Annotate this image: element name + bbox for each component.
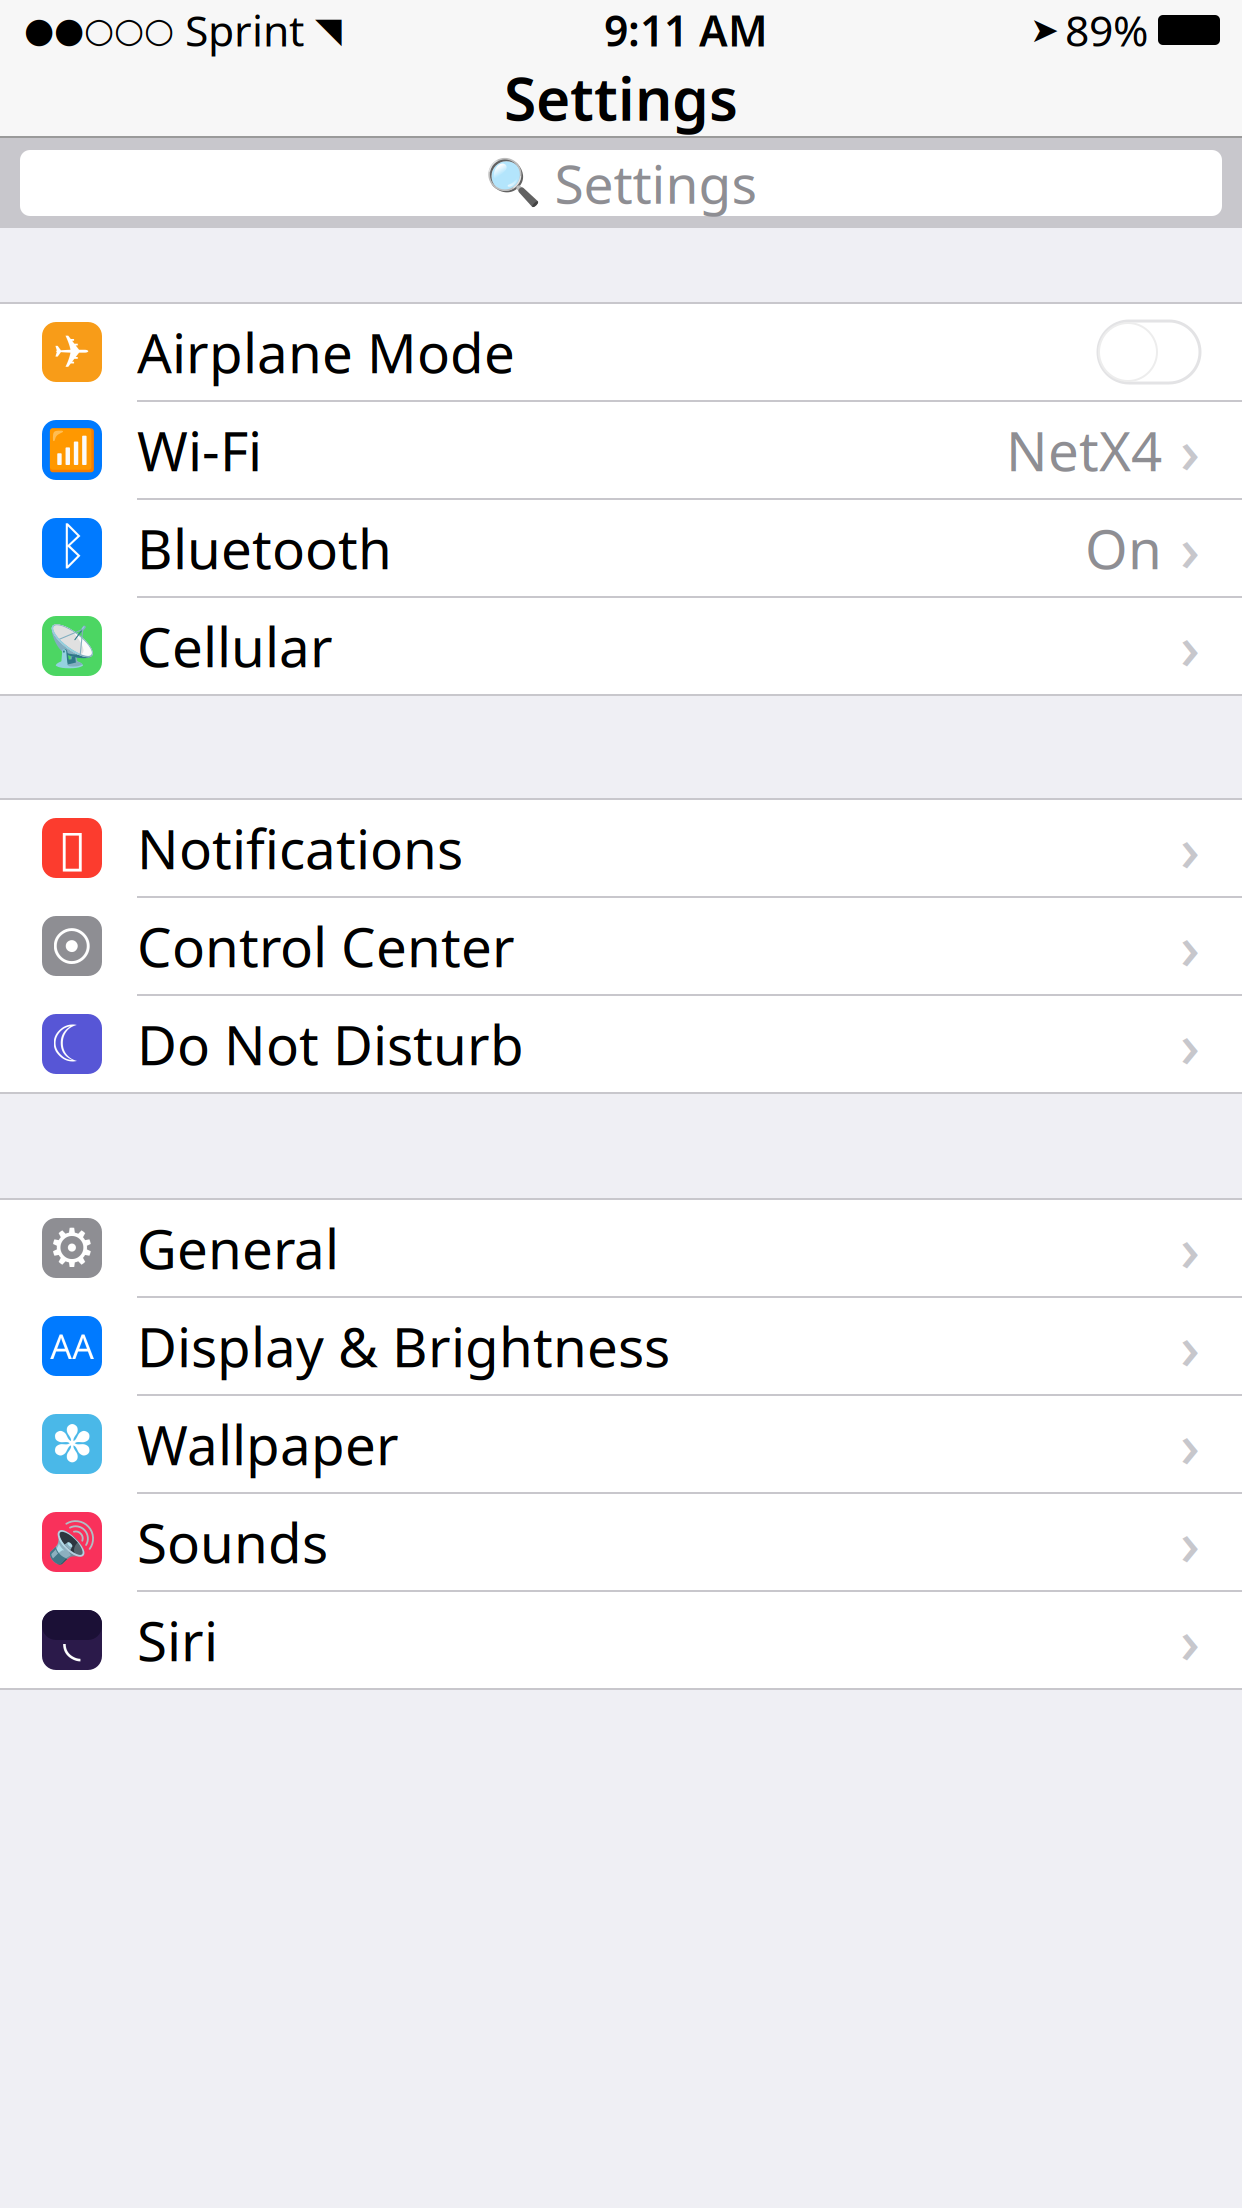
staticText: › [1180,409,1200,491]
staticText: Airplane Mode [137,316,515,388]
staticText: ⚙ [48,1218,96,1278]
button[interactable]: ▯ [0,800,1242,898]
staticText: › [1180,1501,1200,1583]
staticText: ✽ [51,1415,93,1473]
staticText: › [1180,905,1200,987]
staticText: ☾ [49,1015,94,1073]
button[interactable]: 🔊 [0,1494,1242,1592]
staticText: › [1180,507,1200,589]
staticText: › [1180,807,1200,889]
staticText: ➤ [1030,10,1059,50]
staticText: General [137,1212,339,1284]
staticText: ▯ [58,819,86,877]
staticText: Settings [540,148,757,218]
staticText: › [1180,605,1200,687]
staticText: › [1180,1207,1200,1289]
staticText: Sprint [174,2,315,58]
staticText: › [1180,1003,1200,1085]
button[interactable]: ᛒ [0,500,1242,598]
staticText: Display & Brightness [137,1310,670,1382]
staticText: Do Not Disturb [137,1008,524,1080]
staticText: Bluetooth [137,512,392,584]
button[interactable]: ✈ [0,304,1242,402]
staticText: Cellular [137,610,333,682]
staticText: NetX4 [1006,414,1162,486]
staticText: › [1180,1403,1200,1485]
staticText: ◥ [315,10,342,50]
staticText: 📶 [47,427,97,473]
staticText: Control Center [137,910,515,982]
button[interactable]: ☾ [0,996,1242,1094]
button[interactable]: ◟ [0,1592,1242,1690]
button[interactable]: ⚙ [0,1200,1242,1298]
staticText: 🔊 [47,1519,97,1565]
staticText: 📡 [47,623,97,669]
staticText: 🔍 [484,157,540,209]
staticText: 9:11 AM [604,2,768,58]
button[interactable]: 📡 [0,598,1242,696]
staticText: On [1085,512,1162,584]
staticText: ◟ [63,1614,81,1666]
staticText: ᛒ [57,523,87,573]
button[interactable]: ✽ [0,1396,1242,1494]
staticText: Settings [504,59,738,137]
staticText: ●●○○○ [24,10,174,50]
button[interactable]: ⦿ [0,898,1242,996]
staticText: ⦿ [50,925,93,967]
staticText: AA [50,1323,94,1369]
staticText: Sounds [137,1506,328,1578]
staticText: › [1180,1599,1200,1681]
button[interactable]: 📶 [0,402,1242,500]
staticText: ✈ [53,326,91,378]
staticText: Wallpaper [137,1408,399,1480]
button[interactable]: AA [0,1298,1242,1396]
staticText: 89% [1065,2,1148,58]
staticText: › [1180,1305,1200,1387]
staticText: Wi-Fi [137,414,262,486]
staticText: Notifications [137,812,463,884]
staticText: Siri [137,1604,218,1676]
